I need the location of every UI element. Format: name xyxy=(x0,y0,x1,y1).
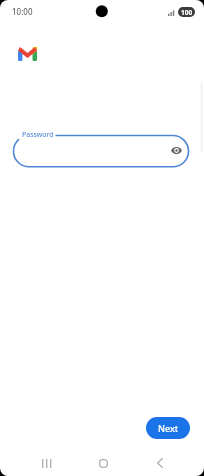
button[interactable]: Show password xyxy=(168,142,184,158)
button[interactable]: Recent apps xyxy=(28,448,64,476)
staticText: 100 xyxy=(181,8,193,17)
button[interactable]: Back xyxy=(142,448,178,476)
button[interactable]: Home xyxy=(85,448,121,476)
staticText: Password xyxy=(22,130,54,140)
button[interactable]: Password field xyxy=(13,134,189,168)
button[interactable]: Next xyxy=(146,417,190,439)
staticText: 10:00 xyxy=(12,6,33,17)
staticText: Next xyxy=(158,422,179,434)
